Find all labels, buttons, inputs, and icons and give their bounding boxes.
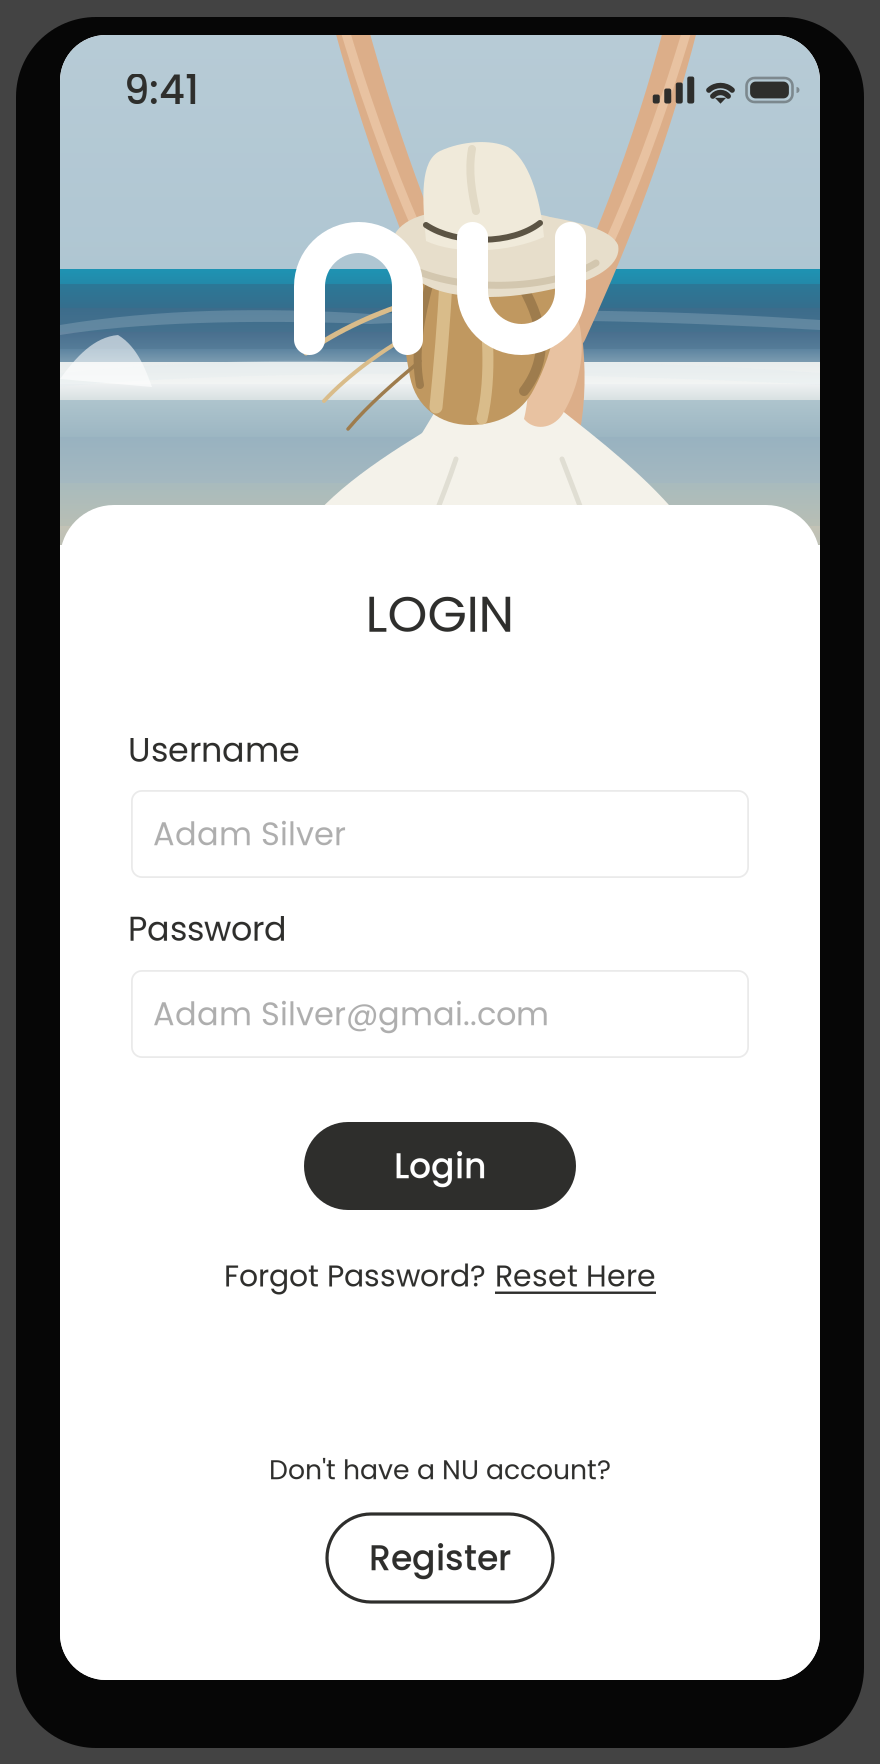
staticText: Register xyxy=(369,1534,511,1582)
staticText: 9:41 xyxy=(124,62,199,118)
staticText: Forgot Password? xyxy=(224,1255,486,1297)
staticText: Adam Silver@gmai..com xyxy=(153,992,549,1036)
staticText: Login xyxy=(394,1142,486,1190)
button[interactable]: Login xyxy=(304,1122,576,1210)
button[interactable]: Adam Silver@gmai..com xyxy=(131,970,749,1058)
staticText: Adam Silver xyxy=(153,812,346,856)
staticText: Password xyxy=(128,906,287,952)
staticText: LOGIN xyxy=(365,578,514,649)
button[interactable]: Forgot Password? xyxy=(60,1253,820,1299)
button[interactable]: Register xyxy=(327,1514,553,1602)
button[interactable]: Adam Silver xyxy=(131,790,749,878)
staticText: Reset Here xyxy=(495,1255,656,1297)
staticText: Don't have a NU account? xyxy=(269,1451,611,1489)
staticText: Username xyxy=(128,727,300,773)
